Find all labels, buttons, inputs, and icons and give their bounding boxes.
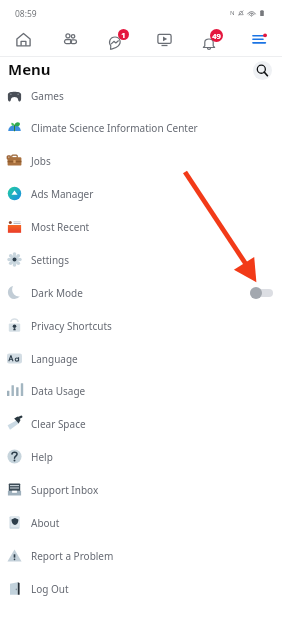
staticText: About: [31, 516, 60, 530]
button[interactable]: Most Recent: [0, 210, 282, 243]
staticText: 08:59: [15, 8, 37, 20]
button[interactable]: Clear Space: [0, 407, 282, 440]
staticText: Dark Mode: [31, 286, 83, 300]
staticText: Settings: [31, 253, 70, 267]
staticText: Ads Manager: [31, 187, 94, 201]
button[interactable]: Help: [0, 440, 282, 473]
staticText: Report a Problem: [31, 549, 114, 563]
button[interactable]: Dark Mode toggle: [250, 287, 273, 299]
button[interactable]: Climate Science Information Center: [0, 111, 282, 144]
staticText: Most Recent: [31, 220, 90, 234]
staticText: Clear Space: [31, 417, 86, 431]
button[interactable]: Home: [0, 23, 47, 55]
button[interactable]: Ads Manager: [0, 177, 282, 210]
button[interactable]: Search: [253, 61, 272, 80]
staticText: Support Inbox: [31, 483, 99, 497]
staticText: Menu: [8, 59, 51, 79]
staticText: Data Usage: [31, 384, 86, 398]
staticText: 1: [121, 30, 126, 40]
button[interactable]: Menu: [235, 23, 282, 55]
staticText: Log Out: [31, 582, 69, 596]
staticText: Games: [31, 89, 64, 103]
button[interactable]: Language: [0, 342, 282, 375]
button[interactable]: About: [0, 506, 282, 539]
staticText: 49: [212, 31, 221, 41]
button[interactable]: Friends: [47, 23, 94, 55]
button[interactable]: Notifications: [188, 23, 235, 55]
staticText: Jobs: [31, 154, 51, 168]
button[interactable]: Games: [0, 79, 282, 112]
button[interactable]: Dark Mode: [0, 276, 282, 309]
button[interactable]: Watch: [141, 23, 188, 55]
button[interactable]: Settings: [0, 243, 282, 276]
staticText: N: [230, 9, 235, 17]
button[interactable]: Privacy Shortcuts: [0, 309, 282, 342]
staticText: Climate Science Information Center: [31, 121, 198, 135]
button[interactable]: Log Out: [0, 572, 282, 605]
staticText: Help: [31, 450, 53, 464]
staticText: Language: [31, 352, 78, 366]
button[interactable]: Data Usage: [0, 374, 282, 407]
button[interactable]: Support Inbox: [0, 473, 282, 506]
button[interactable]: Jobs: [0, 144, 282, 177]
staticText: Privacy Shortcuts: [31, 319, 112, 333]
button[interactable]: Report a Problem: [0, 539, 282, 572]
button[interactable]: Messenger: [94, 23, 141, 55]
